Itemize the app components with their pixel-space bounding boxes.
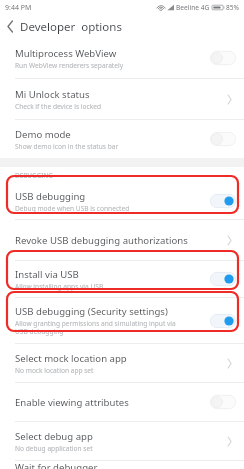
staticText: No debug application set [15,444,93,453]
button[interactable]: Install via USB [0,261,244,297]
staticText: 85% [226,3,240,12]
other: Open [220,429,238,453]
staticText: Mi Unlock status [15,88,90,101]
other: Open [220,87,238,111]
button[interactable]: Demo mode [0,120,244,158]
staticText: Select debug app [15,430,93,443]
other: Open [220,351,238,375]
button[interactable]: Enable viewing attributes [0,383,244,421]
staticText: Debug mode when USB is connected [15,204,130,213]
button[interactable]: Back [0,15,20,38]
staticText: Developer options [20,19,122,35]
button[interactable]: Toggle on [208,311,238,331]
staticText: Allow granting permissions and simulatin… [15,319,176,336]
button[interactable]: Revoke USB debugging authorizations [0,220,244,260]
other: Open [220,228,238,252]
button[interactable]: Toggle off [208,48,238,68]
button[interactable]: Wait for debugger [0,461,244,469]
staticText: 9:44 PM [5,3,32,13]
staticText: USB debugging [15,190,86,203]
button[interactable]: Multiprocess WebView [0,38,244,78]
staticText: USB debugging (Security settings) [15,305,168,318]
button[interactable]: Toggle on [208,191,238,211]
staticText: Allow installing apps via USB [15,282,104,291]
staticText: Install via USB [15,268,79,281]
button[interactable]: USB debugging [0,183,244,219]
button[interactable]: Mi Unlock status [0,79,244,119]
staticText: Show demo icon in the status bar [15,142,119,151]
button[interactable]: Toggle on [208,269,238,289]
button[interactable]: Select debug app [0,422,244,460]
button[interactable]: Toggle off [208,129,238,149]
staticText: Check if the device is locked [15,102,101,111]
staticText: DEBUGGING [15,171,54,180]
staticText: Select mock location app [15,352,127,365]
staticText: Demo mode [15,128,71,141]
staticText: Revoke USB debugging authorizations [15,234,188,247]
button[interactable]: Select mock location app [0,344,244,382]
staticText: Multiprocess WebView [15,47,117,60]
staticText: No mock location app set [15,366,94,375]
button[interactable]: Toggle off [208,392,238,412]
staticText: Enable viewing attributes [15,396,129,409]
staticText: Beeline 4G [176,3,210,12]
staticText: Wait for debugger [15,461,98,469]
staticText: Run WebView renderers separately [15,61,124,70]
button[interactable]: USB debugging (Security settings) [0,298,244,343]
